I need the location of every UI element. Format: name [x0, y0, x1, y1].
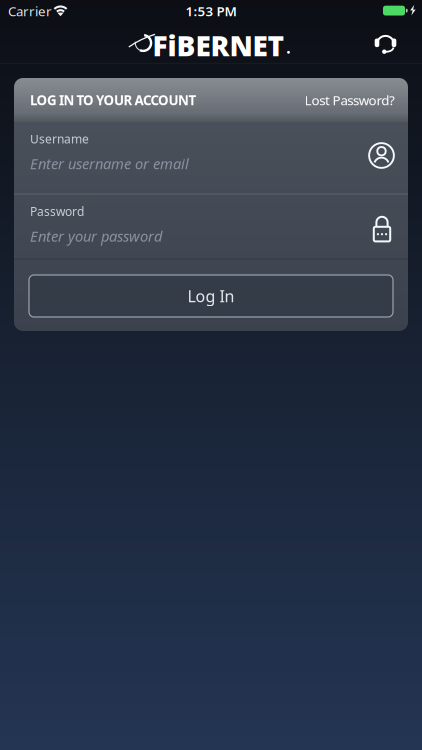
staticText: Enter your password [30, 226, 162, 246]
button[interactable]: Lost Password? [305, 91, 395, 109]
staticText: Lost Password? [305, 91, 395, 109]
staticText: Carrier [8, 2, 52, 20]
staticText: 1:53 PM [185, 2, 236, 20]
staticText: Username [30, 131, 89, 147]
staticText: Enter username or email [30, 154, 189, 173]
staticText: LOG IN TO YOUR ACCOUNT [30, 91, 196, 109]
staticText: Log In [187, 285, 234, 307]
button[interactable]: Password [14, 194, 408, 258]
staticText: FiBERNET [152, 27, 284, 64]
button[interactable]: Username [14, 122, 408, 193]
button[interactable] [367, 27, 403, 63]
button[interactable]: Log In [29, 275, 393, 317]
staticText: Password [30, 203, 84, 219]
